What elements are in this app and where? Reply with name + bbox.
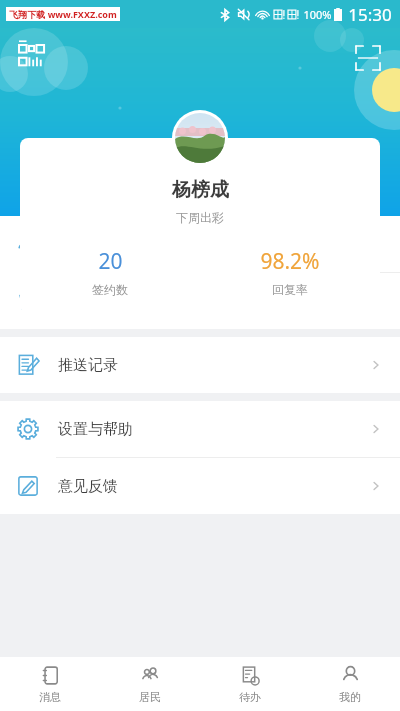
staticText: 设置与帮助	[58, 420, 133, 439]
staticText: 待办	[239, 690, 261, 704]
button[interactable]: 消息	[0, 657, 100, 711]
button[interactable]: 我的动态	[0, 273, 400, 329]
staticText: 意见反馈	[58, 477, 118, 496]
button[interactable]: 设置与帮助	[0, 401, 400, 457]
button[interactable]: 我的团队	[0, 216, 400, 272]
staticText: 我的团队	[58, 235, 118, 254]
staticText: 15:30	[348, 3, 392, 26]
staticText: 20	[98, 247, 123, 276]
staticText: 签约数	[92, 282, 128, 297]
button[interactable]: Scan	[350, 40, 386, 76]
staticText: 我的	[339, 690, 361, 704]
button[interactable]: 推送记录	[0, 337, 400, 393]
button[interactable]: Scan code	[14, 40, 50, 76]
staticText: 杨榜成	[172, 178, 229, 202]
staticText: 我的动态	[58, 292, 118, 311]
staticText: 下周出彩	[176, 210, 224, 225]
staticText: 居民	[139, 690, 161, 704]
staticText: 回复率	[272, 282, 308, 297]
button[interactable]: 我的	[300, 657, 400, 711]
button[interactable]: 居民	[100, 657, 200, 711]
button[interactable]: 杨榜成	[20, 138, 380, 313]
staticText: 推送记录	[58, 356, 118, 375]
staticText: 100%	[303, 7, 332, 22]
staticText: 飞翔下载 www.FXXZ.com	[9, 8, 117, 20]
button[interactable]: 意见反馈	[0, 458, 400, 514]
staticText: 98.2%	[260, 247, 320, 276]
staticText: 消息	[39, 690, 61, 704]
button[interactable]: 待办	[200, 657, 300, 711]
